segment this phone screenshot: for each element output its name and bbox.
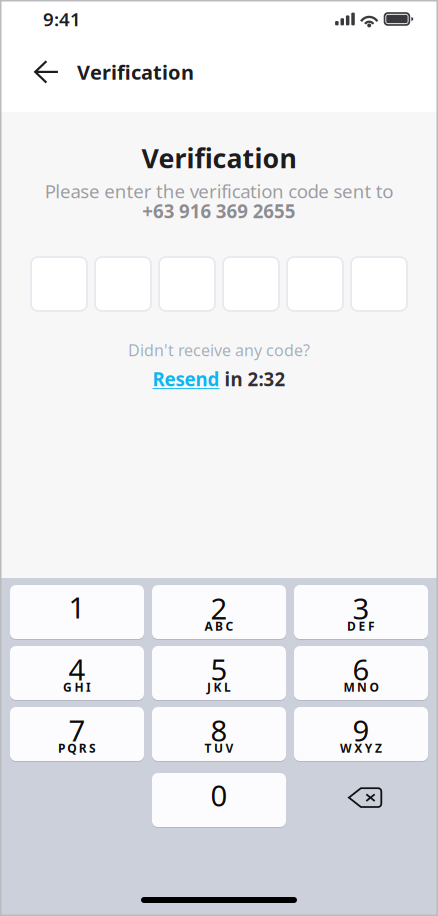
staticText: E xyxy=(358,618,365,634)
staticText: N xyxy=(357,679,367,695)
staticText: C xyxy=(225,618,233,634)
staticText: 3 xyxy=(352,588,369,627)
staticText: M xyxy=(344,679,355,695)
staticText: 6 xyxy=(352,649,369,688)
button[interactable]: 5 xyxy=(152,646,286,701)
staticText: R xyxy=(79,740,87,756)
staticText: 5 xyxy=(210,649,227,688)
staticText: L xyxy=(224,679,231,695)
staticText: Didn't receive any code? xyxy=(128,339,310,361)
staticText: 7 xyxy=(68,710,85,749)
button[interactable]: 0 xyxy=(152,773,286,828)
button[interactable]: 2 xyxy=(152,585,286,640)
staticText: Q xyxy=(67,740,76,756)
staticText: 4 xyxy=(68,649,85,688)
staticText: Verification xyxy=(77,59,194,85)
button[interactable]: 8 xyxy=(152,707,286,762)
staticText: +63 916 369 2655 xyxy=(142,199,296,223)
button[interactable]: Back xyxy=(25,49,68,95)
staticText: D xyxy=(347,618,356,634)
staticText: 2 xyxy=(210,588,227,627)
staticText: in 2:32 xyxy=(219,367,285,391)
staticText: S xyxy=(89,740,96,756)
button[interactable]: 7 xyxy=(10,707,144,762)
staticText: 1 xyxy=(68,587,85,626)
staticText: 9 xyxy=(352,710,369,749)
staticText: Please enter the verification code sent … xyxy=(45,179,393,203)
staticText: X xyxy=(354,740,362,756)
staticText: I xyxy=(86,679,91,695)
staticText: T xyxy=(205,740,212,756)
staticText: W xyxy=(340,740,352,756)
staticText: Verification xyxy=(141,140,296,176)
staticText: A xyxy=(205,618,213,634)
staticText: K xyxy=(213,679,221,695)
staticText: Y xyxy=(365,740,373,756)
staticText: H xyxy=(74,679,83,695)
button[interactable]: 3 xyxy=(294,585,428,640)
staticText: Z xyxy=(375,740,382,756)
button[interactable]: 9 xyxy=(294,707,428,762)
staticText: J xyxy=(207,679,211,695)
button[interactable]: Delete xyxy=(294,773,428,828)
staticText: V xyxy=(225,740,233,756)
staticText: F xyxy=(368,618,375,634)
staticText: 8 xyxy=(210,710,227,749)
staticText: Resend xyxy=(152,367,219,391)
staticText: G xyxy=(63,679,72,695)
button[interactable]: 6 xyxy=(294,646,428,701)
staticText: P xyxy=(58,740,65,756)
button[interactable]: 1 xyxy=(10,585,144,640)
staticText: O xyxy=(369,679,378,695)
button[interactable]: Resend xyxy=(152,367,219,391)
staticText: B xyxy=(215,618,223,634)
staticText: 0 xyxy=(210,775,227,814)
staticText: 9:41 xyxy=(43,7,81,31)
button[interactable]: 4 xyxy=(10,646,144,701)
staticText: U xyxy=(214,740,223,756)
